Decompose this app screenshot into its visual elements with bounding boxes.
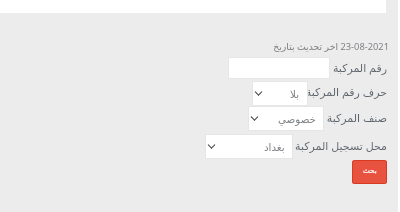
staticText: صنف المركبة [100,110,387,125]
staticText: رقم المركبة [100,60,387,75]
staticText: بلا [290,88,300,100]
button[interactable]: خصوصي [248,106,324,131]
button[interactable]: بغداد [205,134,293,159]
staticText: محل تسجيل المركبة [100,138,387,153]
staticText: خصوصي [278,113,316,125]
button[interactable]: رقم المركبة [228,57,330,79]
button[interactable]: بلا [252,81,308,106]
staticText: حرف رقم المركبة [100,84,387,99]
staticText: بغداد [264,141,285,153]
button[interactable]: بحث [352,160,387,184]
staticText: اخر تحديث بتاريخ ⁦‎23-08-2021‎⁩ [100,40,389,53]
staticText: بحث [363,166,377,174]
